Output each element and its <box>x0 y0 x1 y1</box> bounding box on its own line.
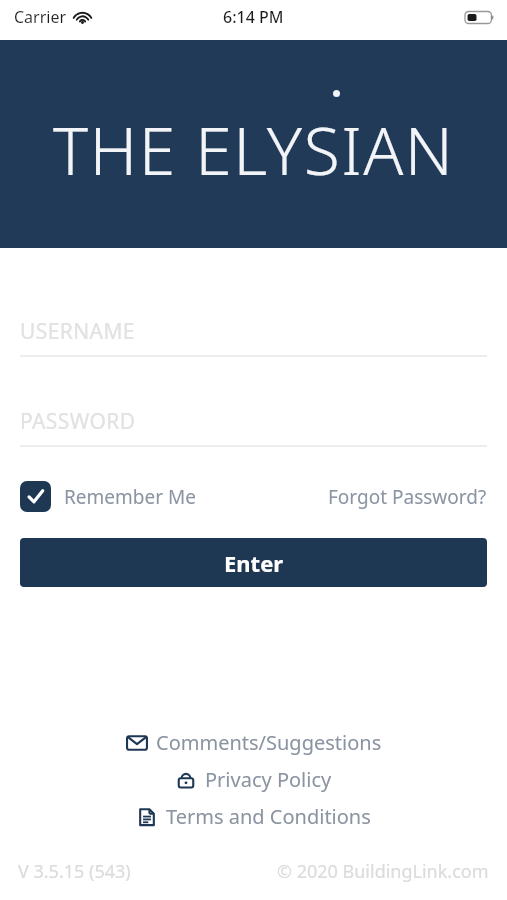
staticText: 6:14 PM <box>223 6 284 28</box>
button[interactable]: Comments and Suggestions <box>122 728 386 757</box>
staticText: USERNAME <box>20 317 135 346</box>
button[interactable]: USERNAME <box>20 317 487 357</box>
button[interactable]: PASSWORD <box>20 407 487 447</box>
staticText: Enter <box>224 548 284 578</box>
button[interactable]: Forgot Password? <box>328 484 487 510</box>
staticText: V 3.5.15 (543) <box>18 859 131 884</box>
staticText: Carrier <box>14 6 67 28</box>
button[interactable]: Enter <box>20 538 487 587</box>
staticText: THE ELYSIAN <box>53 104 455 194</box>
button[interactable]: Terms and Conditions <box>132 802 375 831</box>
staticText: Privacy Policy <box>205 766 332 793</box>
staticText: © 2020 BuildingLink.com <box>277 859 489 884</box>
button[interactable]: Privacy Policy <box>171 765 336 794</box>
button[interactable]: Remember Me <box>20 481 196 512</box>
staticText: Remember Me <box>64 484 196 510</box>
staticText: Terms and Conditions <box>166 803 371 830</box>
staticText: Forgot Password? <box>328 484 487 510</box>
staticText: Comments/Suggestions <box>156 729 382 756</box>
staticText: PASSWORD <box>20 407 136 436</box>
